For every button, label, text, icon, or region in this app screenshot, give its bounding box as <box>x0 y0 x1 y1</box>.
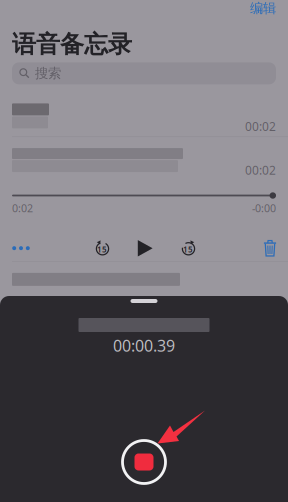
staticText: 15 <box>183 244 193 255</box>
staticText: 00:00.39 <box>113 335 175 356</box>
staticText: 语音备忘录 <box>12 30 132 59</box>
button[interactable]: 更多 <box>6 237 32 259</box>
staticText: 00:02 <box>245 118 276 134</box>
button[interactable]: 00:02 <box>0 101 288 136</box>
button[interactable]: 前进 15 秒 <box>176 237 200 259</box>
button[interactable] <box>0 262 288 296</box>
staticText: -0:00 <box>252 201 276 215</box>
button[interactable]: 播放 <box>133 237 157 259</box>
button[interactable]: 搜索 <box>12 62 276 84</box>
staticText: 编辑 <box>250 0 276 16</box>
button[interactable]: 停止录音 <box>120 438 168 486</box>
staticText: 00:02 <box>245 162 276 178</box>
staticText: 15 <box>97 244 107 255</box>
button[interactable]: 编辑 <box>245 0 281 19</box>
staticText: 0:02 <box>12 201 33 215</box>
staticText: 搜索 <box>35 65 61 82</box>
button[interactable]: 后退 15 秒 <box>90 237 114 259</box>
button[interactable]: 删除 <box>258 237 282 259</box>
